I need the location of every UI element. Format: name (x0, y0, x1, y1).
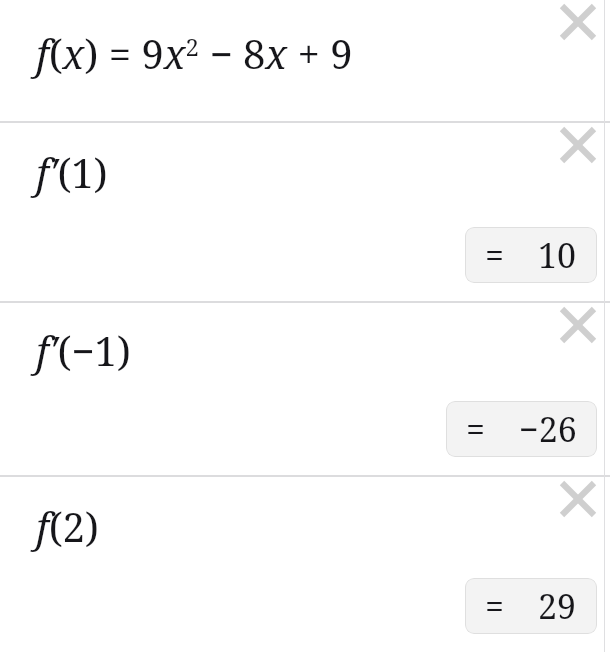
button[interactable]: = 10 (465, 227, 597, 283)
button[interactable]: Delete row (554, 121, 602, 169)
button[interactable]: f(2) (0, 477, 610, 652)
staticText: f(x) = 9x2 − 8x + 9 (36, 26, 353, 80)
button[interactable]: Delete row (554, 0, 602, 46)
staticText: = 29 (485, 583, 577, 629)
staticText: f′(1) (36, 145, 108, 199)
button[interactable]: Delete row (554, 301, 602, 349)
button[interactable]: Delete row (554, 475, 602, 523)
staticText: = 10 (485, 232, 577, 278)
button[interactable]: = −26 (446, 401, 597, 457)
staticText: f(2) (36, 499, 99, 553)
button[interactable]: f′(−1) (0, 303, 610, 475)
button[interactable]: f(x) = 9x2 − 8x + 9 (0, 0, 610, 121)
staticText: = −26 (466, 406, 577, 452)
button[interactable]: = 29 (465, 578, 597, 634)
button[interactable]: f′(1) (0, 123, 610, 301)
staticText: f′(−1) (36, 323, 131, 377)
